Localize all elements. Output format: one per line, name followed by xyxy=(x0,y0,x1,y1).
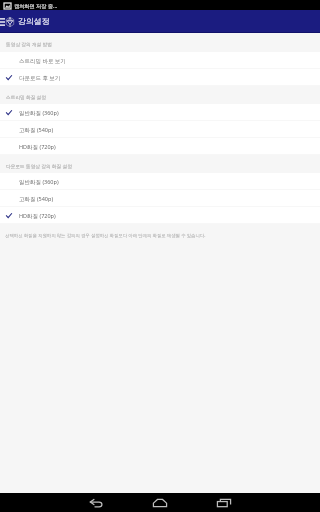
staticText: 다운로드 후 보기 xyxy=(19,74,61,82)
button[interactable]: 고화질 (540p) xyxy=(0,190,320,207)
button[interactable]: Back xyxy=(64,493,128,512)
staticText: 동영상 강의 개설 방법 xyxy=(6,41,52,47)
staticText: 캡쳐화면 저장 중... xyxy=(14,2,58,9)
staticText: 고화질 (540p) xyxy=(19,126,54,134)
button[interactable]: 다운로드 후 보기 xyxy=(0,69,320,86)
staticText: 강의설정 xyxy=(18,16,50,26)
staticText: 스트리밍 화질 설정 xyxy=(6,94,46,100)
button[interactable]: Menu xyxy=(0,10,5,33)
staticText: 고화질 (540p) xyxy=(19,195,54,203)
button[interactable]: 일반화질 (360p) xyxy=(0,104,320,121)
staticText: 일반화질 (360p) xyxy=(19,109,59,117)
button[interactable]: 고화질 (540p) xyxy=(0,121,320,138)
staticText: HD화질 (720p) xyxy=(19,143,56,151)
button[interactable]: App logo xyxy=(6,10,14,33)
staticText: 스트리밍 바로 보기 xyxy=(19,57,66,65)
staticText: 선택하신 화질을 지원하지 않는 강의의 경우 설정하신 화질보다 아래 단계의… xyxy=(5,232,206,238)
button[interactable]: 스트리밍 바로 보기 xyxy=(0,52,320,69)
button[interactable]: HD화질 (720p) xyxy=(0,138,320,155)
button[interactable]: Recents xyxy=(192,493,256,512)
button[interactable]: HD화질 (720p) xyxy=(0,207,320,224)
staticText: 일반화질 (360p) xyxy=(19,178,59,186)
button[interactable]: Home xyxy=(128,493,192,512)
button[interactable]: 일반화질 (360p) xyxy=(0,173,320,190)
staticText: HD화질 (720p) xyxy=(19,212,56,220)
staticText: 다운로드 동영상 강의 화질 설정 xyxy=(6,163,72,169)
